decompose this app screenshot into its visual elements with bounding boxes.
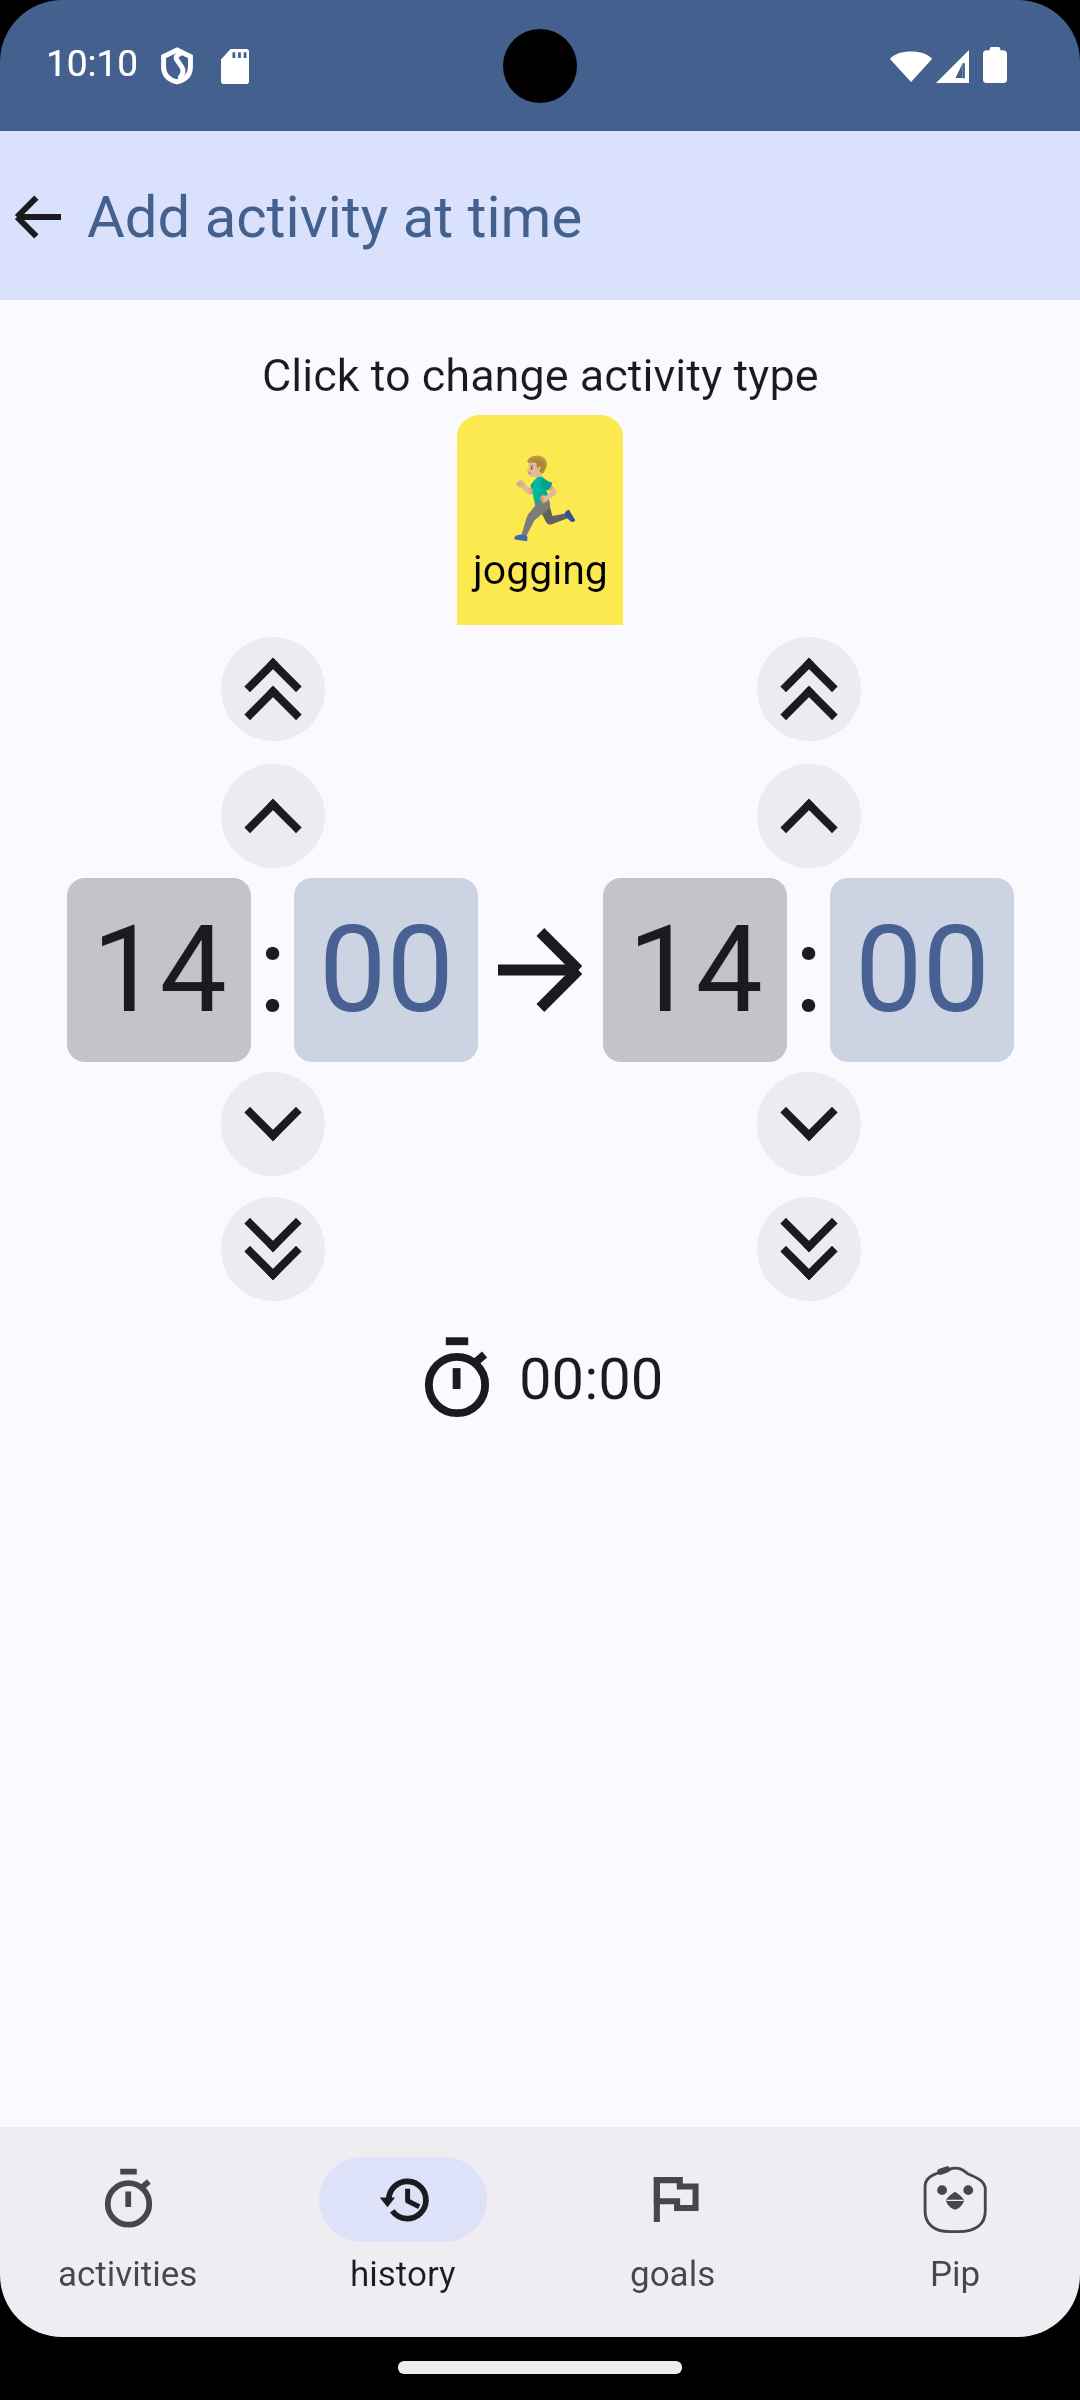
button[interactable]: 00 [830, 878, 1014, 1062]
button[interactable]: Back [0, 178, 78, 256]
staticText: 🏃🏼‍♂️ [490, 452, 591, 547]
button[interactable]: Decrease [757, 1072, 861, 1176]
button[interactable]: Increase [757, 764, 861, 868]
staticText: 00:00 [519, 1345, 664, 1413]
button[interactable]: activities [3, 2127, 253, 2295]
staticText: goals [630, 2254, 716, 2295]
staticText: 00 [855, 900, 990, 1041]
button[interactable]: 🏃🏼‍♂️ [457, 415, 623, 625]
button[interactable]: Decrease a lot [757, 1197, 861, 1301]
button[interactable]: 14 [67, 878, 251, 1062]
button[interactable]: Increase a lot [757, 637, 861, 741]
button[interactable]: 14 [603, 878, 787, 1062]
staticText: Click to change activity type [262, 349, 819, 402]
button[interactable]: Increase [221, 764, 325, 868]
staticText: 00 [319, 900, 454, 1041]
staticText: : [258, 900, 288, 1041]
staticText: history [350, 2254, 456, 2295]
button[interactable]: goals [548, 2127, 798, 2295]
button[interactable]: history [278, 2127, 528, 2295]
staticText: 14 [92, 900, 227, 1041]
staticText: Pip [930, 2254, 981, 2295]
button[interactable]: Pip [830, 2127, 1080, 2295]
button[interactable]: Decrease a lot [221, 1197, 325, 1301]
button[interactable]: 00 [294, 878, 478, 1062]
staticText: : [794, 900, 824, 1041]
staticText: 10:10 [46, 42, 139, 85]
staticText: Add activity at time [87, 183, 583, 251]
staticText: 14 [628, 900, 763, 1041]
button[interactable]: Decrease [221, 1072, 325, 1176]
button[interactable]: Increase a lot [221, 637, 325, 741]
staticText: jogging [473, 546, 608, 594]
staticText: activities [58, 2254, 198, 2295]
